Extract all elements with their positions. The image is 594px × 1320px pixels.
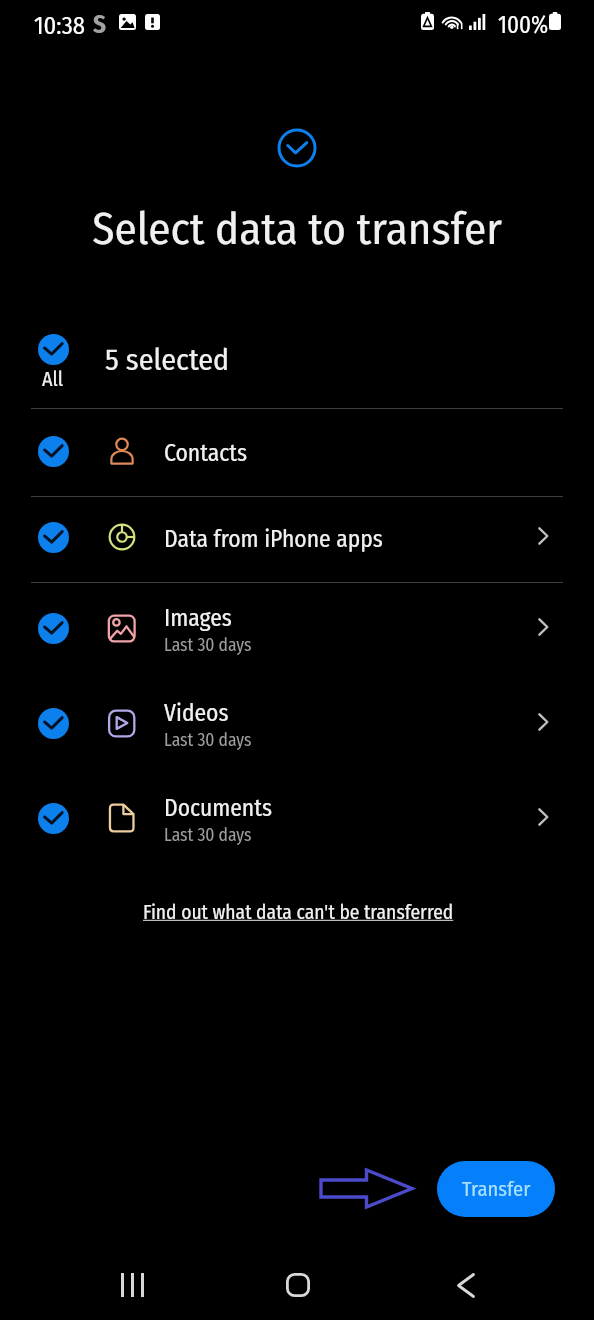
button[interactable]: Select documents [27,792,79,844]
button[interactable]: Back [440,1260,492,1310]
button[interactable]: Select videos [27,697,79,749]
button[interactable]: Open documents [519,793,567,841]
staticText: Documents [164,794,272,822]
button[interactable]: Find out what data can't be transferred [137,897,460,928]
staticText: Find out what data can't be transferred [143,901,454,924]
staticText: S [93,10,106,40]
staticText: Images [164,604,232,632]
staticText: All [42,367,64,391]
button[interactable]: Open images [519,603,567,651]
staticText: 10:38 [34,11,86,40]
staticText: Last 30 days [164,825,252,846]
staticText: Last 30 days [164,635,252,656]
button[interactable]: Home [272,1260,324,1310]
staticText: Select data to transfer [0,202,594,256]
button[interactable]: Transfer [437,1161,555,1217]
staticText: 100% [498,11,549,39]
button[interactable]: Recents [106,1260,158,1310]
button[interactable]: Select iPhone app data [27,511,79,563]
staticText: Contacts [164,439,248,467]
button[interactable]: Select contacts [27,425,79,477]
button[interactable]: Open iPhone app data [519,512,567,560]
staticText: Transfer [462,1177,531,1202]
staticText: Last 30 days [164,730,252,751]
button[interactable]: Select all [27,323,79,375]
staticText: 5 selected [105,342,230,378]
staticText: Videos [164,699,229,727]
button[interactable]: Select images [27,602,79,654]
button[interactable]: Open videos [519,698,567,746]
staticText: Data from iPhone apps [164,525,383,553]
